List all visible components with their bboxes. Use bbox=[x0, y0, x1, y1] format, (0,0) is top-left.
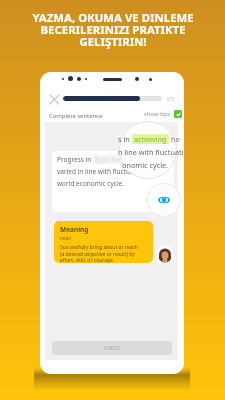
button[interactable]: Close bbox=[45, 90, 63, 108]
staticText: s in bbox=[118, 134, 132, 144]
button[interactable]: Meaning bbox=[54, 221, 153, 263]
staticText: n line with fluctuati bbox=[118, 147, 184, 157]
button[interactable]: Progress in bbox=[52, 151, 174, 212]
staticText: onomic cycle. bbox=[122, 160, 169, 170]
staticText: YAZMA, OKUMA VE DINLEME BECERILERINIZI P… bbox=[32, 10, 194, 49]
staticText: world economic cycle. bbox=[57, 179, 124, 188]
staticText: Meaning bbox=[60, 225, 89, 234]
button[interactable]: CHECK bbox=[52, 341, 172, 355]
staticText: 3/3 bbox=[166, 95, 175, 102]
staticText: show tips bbox=[144, 110, 171, 118]
staticText: Type here bbox=[95, 155, 126, 164]
staticText: Progress in bbox=[57, 155, 93, 164]
button[interactable]: show tips bbox=[144, 110, 182, 118]
staticText: Successfully bring about or reach (a des… bbox=[60, 244, 138, 263]
staticText: CHECK bbox=[104, 345, 121, 352]
staticText: achieving bbox=[134, 134, 167, 144]
staticText: econ bbox=[128, 155, 145, 164]
button[interactable]: Reveal answer bbox=[147, 183, 181, 217]
staticText: Complete sentence bbox=[49, 112, 103, 120]
staticText: noun bbox=[60, 235, 72, 241]
staticText: varied in line with fluctua bbox=[57, 167, 134, 176]
staticText: he bbox=[169, 134, 180, 144]
